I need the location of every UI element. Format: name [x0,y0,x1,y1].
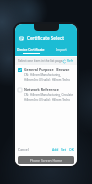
staticText: Select one item in the list page [18,59,63,63]
button[interactable]: Menu [19,36,24,41]
button[interactable]: Phone Screen Home [18,156,74,164]
other: Refresh [63,60,66,63]
button[interactable]: Refresh [63,59,74,63]
staticText: General Purpose Browse [24,67,70,72]
button[interactable]: Cancel [18,147,29,152]
button[interactable]: OK [69,147,74,152]
staticText: Import [56,47,67,51]
button[interactable]: Set [61,147,67,152]
button[interactable]: Device Certificate [15,45,46,56]
staticText: Hillrom Inc US valid : Hillrom Techo Van… [24,78,74,82]
staticText: Network Reference Browse [24,87,74,92]
button[interactable]: Not selected [18,88,22,92]
button[interactable]: Import [46,45,77,56]
staticText: Hillrom Inc US valid : Hillrom Techo Van… [24,98,74,102]
button[interactable]: Selected [18,68,22,72]
button[interactable]: Menu [15,33,77,43]
button[interactable]: Selected [15,65,77,85]
staticText: CN : Hillrom Manufacturing, Controller F… [24,73,74,77]
staticText: Refresh [67,59,74,63]
staticText: Certificate Select [27,35,64,41]
button[interactable]: Add [52,147,59,152]
staticText: CN : Hillrom Manufacturing, Circulate Fo… [24,93,74,97]
button[interactable]: Not selected [15,85,77,105]
staticText: Phone Screen Home [18,158,74,163]
staticText: Device Certificate [17,47,45,51]
